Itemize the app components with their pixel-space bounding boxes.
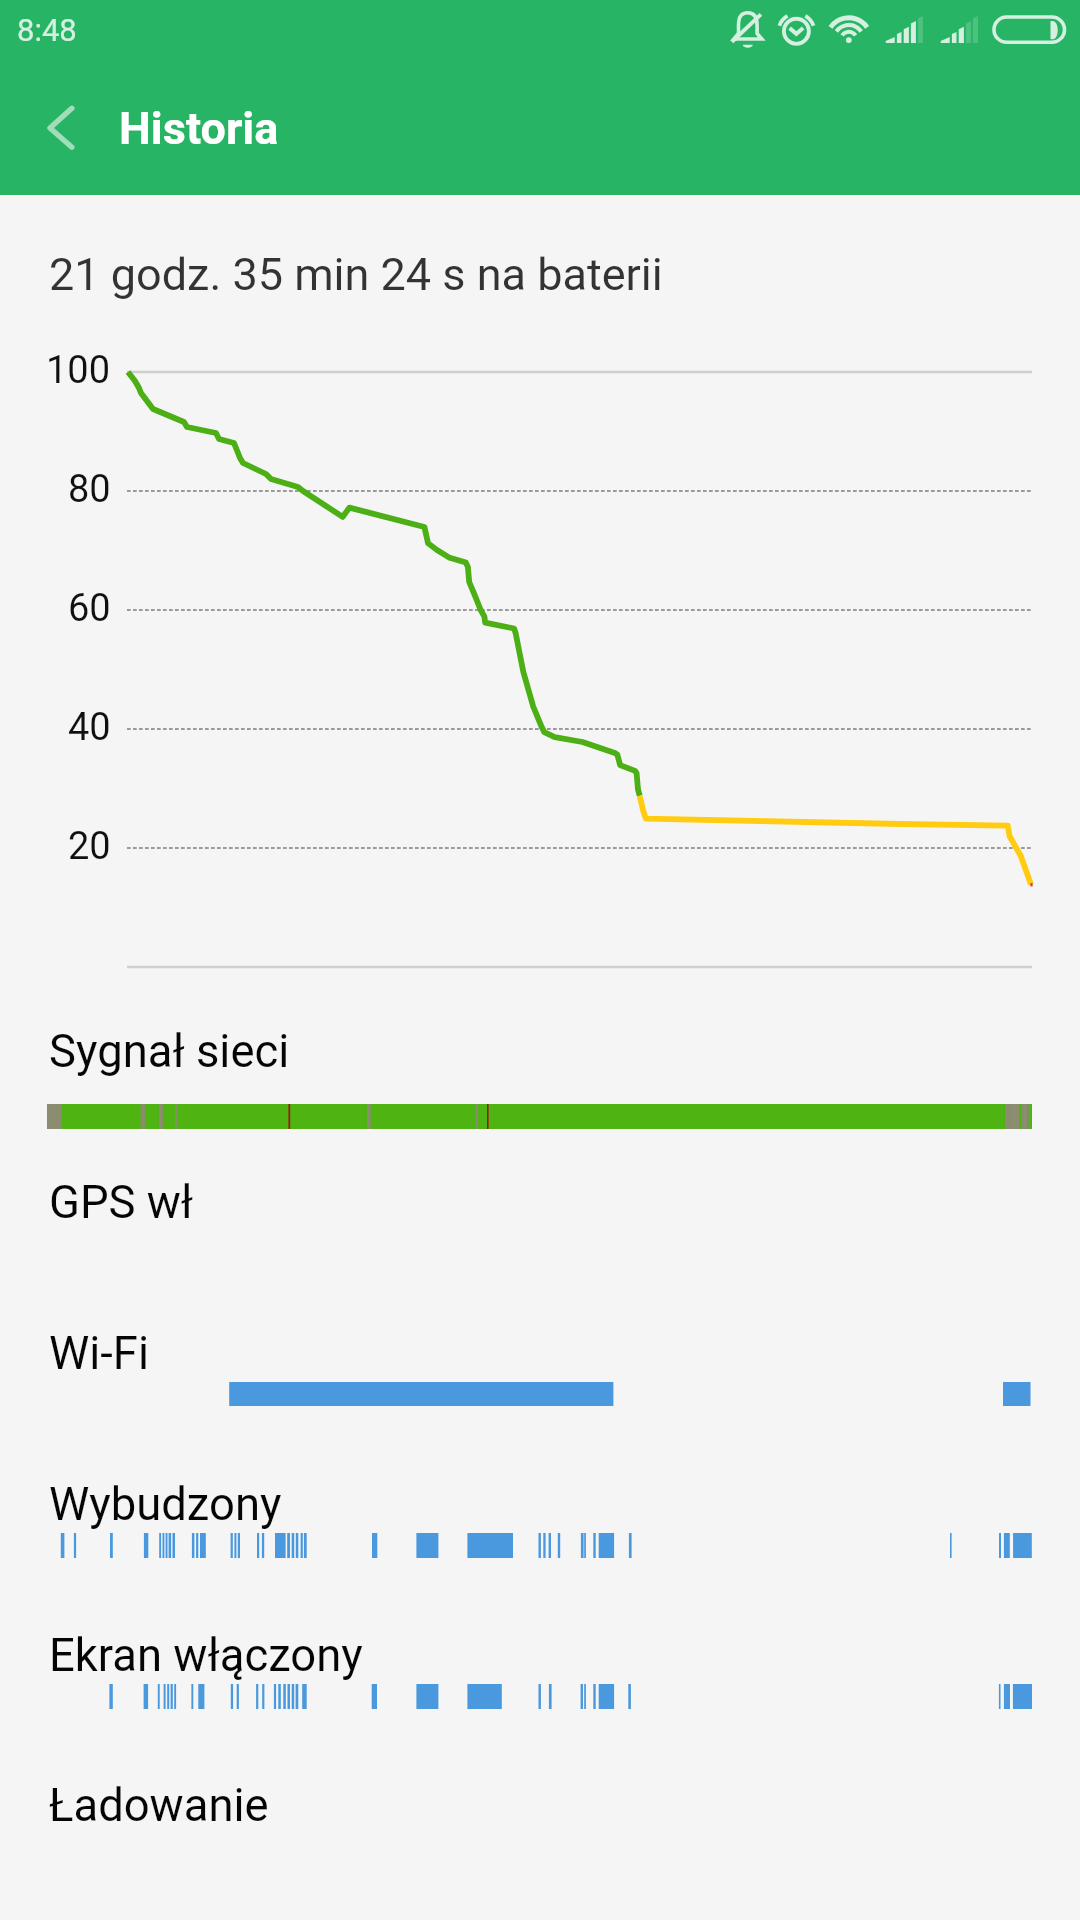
staticText: Ekran włączony (49, 1629, 363, 1682)
staticText: 20 (68, 824, 111, 869)
staticText: 8:48 (17, 12, 77, 48)
button[interactable]: Sygnał sieci (0, 1010, 1080, 1161)
staticText: 60 (68, 586, 111, 631)
staticText: GPS wł (49, 1176, 194, 1229)
button[interactable]: GPS wł (0, 1161, 1080, 1312)
staticText: Wybudzony (49, 1478, 282, 1531)
staticText: 40 (68, 705, 111, 750)
staticText: 100 (46, 348, 111, 393)
staticText: Historia (119, 102, 279, 155)
button[interactable]: Wi-Fi (0, 1312, 1080, 1463)
button[interactable]: Ekran włączony (0, 1614, 1080, 1765)
button[interactable]: Wybudzony (0, 1463, 1080, 1614)
button[interactable]: Back (14, 80, 110, 176)
staticText: Ładowanie (49, 1779, 269, 1832)
staticText: 21 godz. 35 min 24 s na baterii (49, 248, 663, 301)
staticText: Sygnał sieci (49, 1025, 290, 1078)
staticText: Wi-Fi (49, 1327, 149, 1380)
staticText: 80 (68, 467, 111, 512)
button[interactable]: Ładowanie (0, 1765, 1080, 1920)
